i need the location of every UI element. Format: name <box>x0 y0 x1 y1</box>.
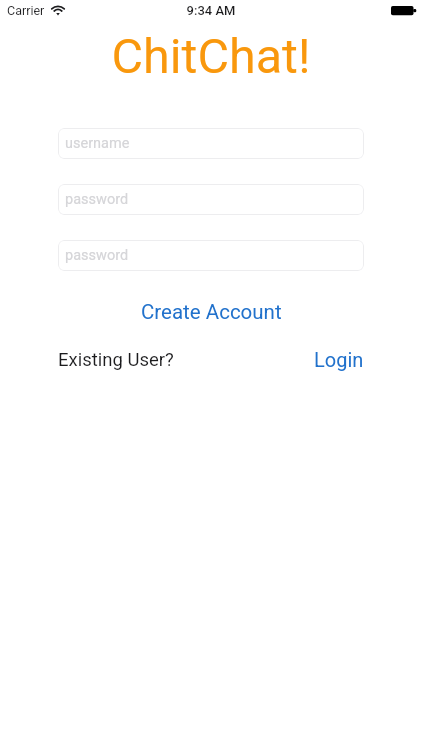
staticText: Existing User? <box>58 349 174 371</box>
staticText: Create Account <box>141 300 282 324</box>
staticText: Carrier <box>7 3 45 18</box>
staticText: password <box>65 191 129 208</box>
staticText: username <box>65 135 130 152</box>
staticText: password <box>65 247 129 264</box>
staticText: Login <box>314 348 364 371</box>
button[interactable]: password <box>58 184 364 215</box>
button[interactable]: Create Account <box>0 300 422 324</box>
button[interactable]: Login <box>314 348 364 371</box>
button[interactable]: password <box>58 240 364 271</box>
other: Battery full <box>391 6 417 16</box>
staticText: ChitChat! <box>0 28 422 85</box>
staticText: 9:34 AM <box>0 3 422 18</box>
button[interactable]: username <box>58 128 364 159</box>
other: Wi-Fi signal <box>51 5 65 16</box>
